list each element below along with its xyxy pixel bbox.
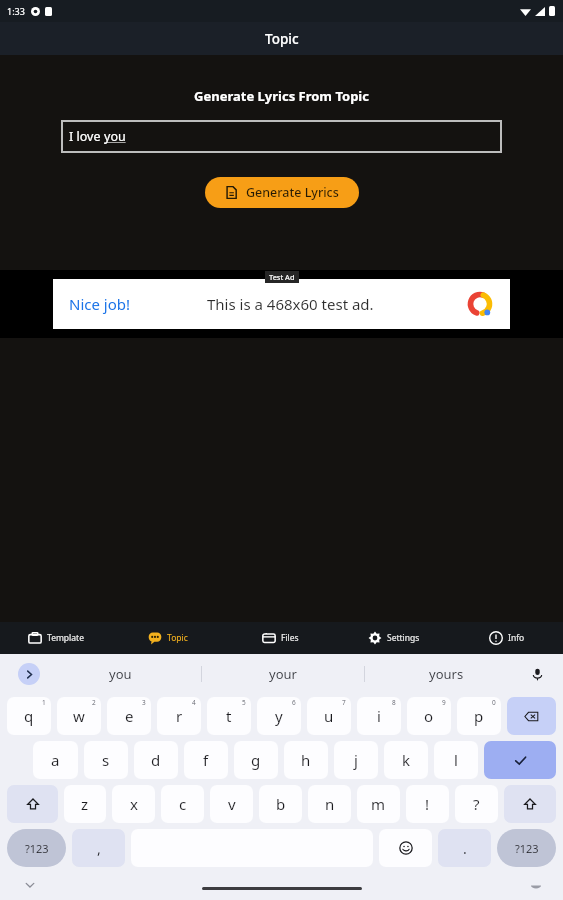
button[interactable]: Backspace bbox=[507, 697, 556, 735]
button[interactable]: m bbox=[357, 785, 400, 823]
button[interactable]: l bbox=[434, 741, 478, 779]
button[interactable]: p bbox=[457, 697, 501, 735]
staticText: Test Ad bbox=[269, 272, 295, 282]
staticText: your bbox=[269, 665, 297, 683]
button[interactable]: yours bbox=[365, 654, 527, 694]
staticText: s bbox=[102, 750, 110, 770]
button[interactable]: q bbox=[7, 697, 51, 735]
staticText: i bbox=[377, 706, 381, 726]
button[interactable]: i bbox=[357, 697, 401, 735]
staticText: x bbox=[130, 794, 138, 814]
staticText: Template bbox=[47, 632, 84, 644]
staticText: This is a 468x60 test ad. bbox=[207, 294, 374, 314]
staticText: ! bbox=[425, 794, 430, 814]
button[interactable]: Template bbox=[0, 622, 112, 654]
staticText: 5 bbox=[242, 698, 246, 707]
staticText: m bbox=[371, 794, 386, 814]
staticText: y bbox=[275, 706, 283, 726]
button[interactable]: ?123 bbox=[7, 829, 66, 867]
staticText: you bbox=[109, 665, 132, 683]
button[interactable]: Topic bbox=[112, 622, 224, 654]
button[interactable]: your bbox=[202, 654, 364, 694]
button[interactable]: Hide keyboard bbox=[22, 877, 38, 893]
staticText: yours bbox=[429, 665, 464, 683]
staticText: b bbox=[276, 794, 286, 814]
button[interactable]: r bbox=[157, 697, 201, 735]
staticText: Nice job! bbox=[69, 294, 131, 314]
button[interactable]: Generate Lyrics bbox=[205, 177, 359, 208]
staticText: Generate Lyrics From Topic bbox=[0, 87, 563, 105]
button[interactable]: w bbox=[57, 697, 101, 735]
button[interactable]: a bbox=[33, 741, 78, 779]
button[interactable]: b bbox=[259, 785, 302, 823]
staticText: g bbox=[251, 750, 261, 770]
staticText: , bbox=[97, 839, 101, 858]
button[interactable]: t bbox=[207, 697, 251, 735]
staticText: h bbox=[301, 750, 311, 770]
button[interactable]: . bbox=[438, 829, 491, 867]
staticText: z bbox=[81, 794, 89, 814]
staticText: f bbox=[203, 750, 209, 770]
staticText: a bbox=[51, 750, 60, 770]
button[interactable]: Nice job! bbox=[53, 279, 510, 329]
button[interactable]: Voice input bbox=[527, 664, 547, 684]
staticText: o bbox=[424, 706, 434, 726]
staticText: w bbox=[73, 706, 85, 726]
staticText: ?123 bbox=[515, 841, 539, 856]
staticText: you bbox=[104, 128, 126, 145]
button[interactable]: n bbox=[308, 785, 351, 823]
button[interactable]: v bbox=[210, 785, 253, 823]
button[interactable]: h bbox=[284, 741, 328, 779]
button[interactable]: Settings bbox=[337, 622, 450, 654]
button[interactable]: , bbox=[72, 829, 125, 867]
button[interactable]: Expand suggestions bbox=[18, 663, 40, 685]
staticText: ?123 bbox=[25, 841, 49, 856]
button[interactable]: u bbox=[307, 697, 351, 735]
button[interactable]: Files bbox=[224, 622, 337, 654]
staticText: Files bbox=[281, 632, 299, 644]
staticText: 0 bbox=[492, 698, 496, 707]
button[interactable]: j bbox=[334, 741, 378, 779]
staticText: Topic bbox=[167, 632, 188, 644]
staticText: r bbox=[176, 706, 183, 726]
staticText: e bbox=[125, 706, 134, 726]
button[interactable]: d bbox=[134, 741, 178, 779]
button[interactable]: e bbox=[107, 697, 151, 735]
staticText: 6 bbox=[292, 698, 296, 707]
button[interactable]: z bbox=[64, 785, 106, 823]
button[interactable]: ? bbox=[455, 785, 498, 823]
button[interactable]: c bbox=[161, 785, 204, 823]
button[interactable]: Shift bbox=[504, 785, 556, 823]
button[interactable]: Shift bbox=[7, 785, 58, 823]
staticText: 4 bbox=[192, 698, 196, 707]
staticText: k bbox=[402, 750, 411, 770]
button[interactable]: g bbox=[234, 741, 278, 779]
staticText: u bbox=[324, 706, 334, 726]
button[interactable]: you bbox=[40, 654, 201, 694]
button[interactable]: x bbox=[112, 785, 155, 823]
button[interactable]: k bbox=[384, 741, 428, 779]
button[interactable]: ! bbox=[406, 785, 449, 823]
staticText: 1 bbox=[42, 698, 46, 707]
staticText: . bbox=[463, 839, 467, 858]
button[interactable]: I love bbox=[61, 120, 502, 153]
staticText: q bbox=[24, 706, 34, 726]
staticText: l bbox=[454, 750, 458, 770]
button[interactable]: ?123 bbox=[497, 829, 556, 867]
staticText: j bbox=[354, 750, 358, 770]
button[interactable]: y bbox=[257, 697, 301, 735]
button[interactable]: f bbox=[184, 741, 228, 779]
staticText: c bbox=[179, 794, 187, 814]
staticText: ? bbox=[473, 794, 480, 814]
button[interactable]: Emoji bbox=[379, 829, 432, 867]
button[interactable]: Info bbox=[450, 622, 563, 654]
staticText: 9 bbox=[442, 698, 446, 707]
staticText: Generate Lyrics bbox=[246, 184, 339, 201]
button[interactable]: o bbox=[407, 697, 451, 735]
button[interactable]: Keyboard switcher bbox=[529, 878, 543, 892]
button[interactable]: Enter bbox=[484, 741, 556, 779]
staticText: Info bbox=[508, 632, 525, 644]
button[interactable]: s bbox=[84, 741, 128, 779]
staticText: I love bbox=[69, 128, 104, 145]
